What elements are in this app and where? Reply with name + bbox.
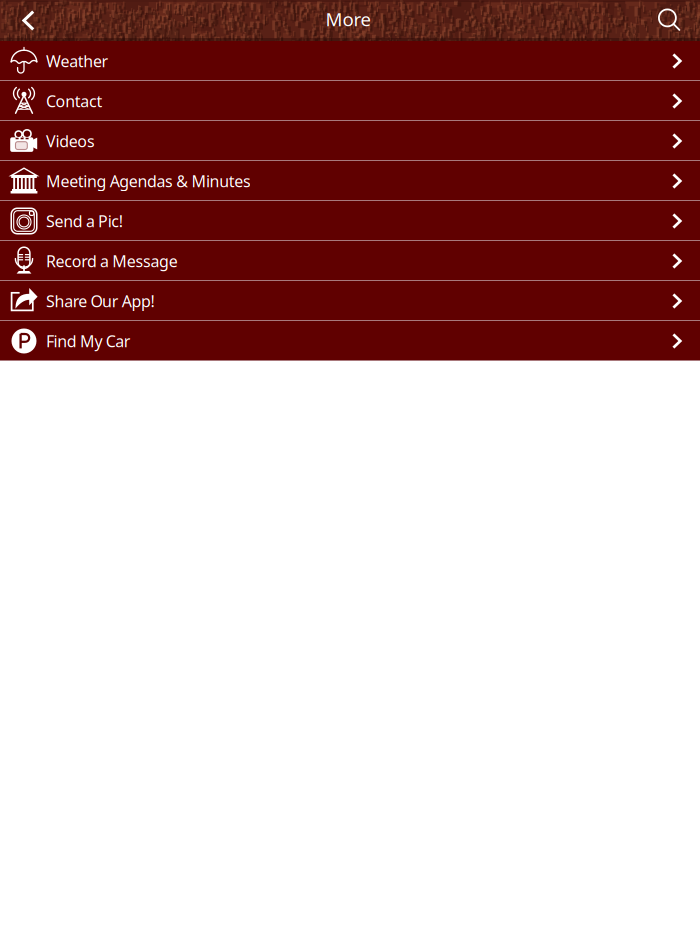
button[interactable]: Videos — [0, 121, 700, 161]
staticText: Find My Car — [46, 330, 131, 352]
staticText: Record a Message — [46, 250, 178, 272]
staticText: More — [326, 7, 372, 31]
button[interactable]: Record a Message — [0, 241, 700, 281]
staticText: Contact — [46, 90, 102, 112]
staticText: Videos — [46, 130, 95, 152]
button[interactable]: Share Our App! — [0, 281, 700, 321]
staticText: Share Our App! — [46, 290, 154, 312]
button[interactable]: Meeting Agendas & Minutes — [0, 161, 700, 201]
button[interactable]: Weather — [0, 41, 700, 81]
button[interactable]: Contact — [0, 81, 700, 121]
button[interactable]: Send a Pic! — [0, 201, 700, 241]
staticText: Weather — [46, 50, 108, 72]
button[interactable]: Back — [0, 0, 53, 41]
staticText: Meeting Agendas & Minutes — [46, 170, 251, 192]
button[interactable]: Search — [644, 0, 700, 41]
button[interactable]: Find My Car — [0, 321, 700, 361]
staticText: Send a Pic! — [46, 210, 123, 232]
